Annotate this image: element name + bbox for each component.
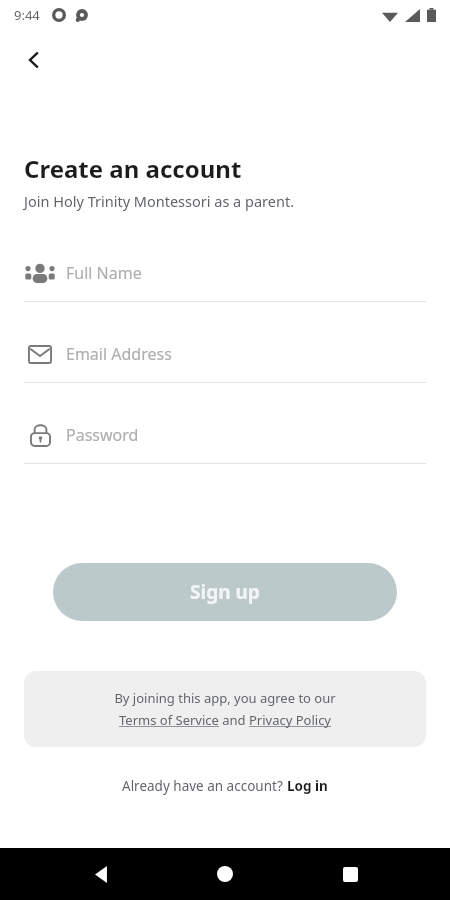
staticText: 9:44	[14, 6, 40, 24]
staticText: Create an account	[24, 152, 242, 185]
staticText: Full Name	[66, 262, 142, 284]
staticText: Terms of Service and Privacy Policy	[119, 711, 331, 729]
staticText: Join Holy Trinity Montessori as a parent…	[24, 191, 295, 211]
staticText: Email Address	[66, 343, 172, 365]
button[interactable]: Sign up	[53, 563, 397, 621]
staticText: Sign up	[190, 579, 260, 605]
button[interactable]: Back	[10, 36, 58, 84]
button[interactable]: By joining this app, you agree to our	[24, 671, 426, 747]
button[interactable]: Home	[201, 850, 249, 898]
staticText: Already have an account?	[122, 777, 287, 795]
button[interactable]: Back	[77, 850, 125, 898]
staticText: Password	[66, 424, 139, 446]
button[interactable]: Password	[24, 407, 426, 488]
staticText: By joining this app, you agree to our	[114, 689, 336, 707]
staticText: Log in	[287, 777, 328, 795]
button[interactable]: Already have an account?	[110, 771, 340, 801]
button[interactable]: Email Address	[24, 326, 426, 407]
button[interactable]: Recent apps	[326, 850, 374, 898]
button[interactable]: Full Name	[24, 245, 426, 326]
